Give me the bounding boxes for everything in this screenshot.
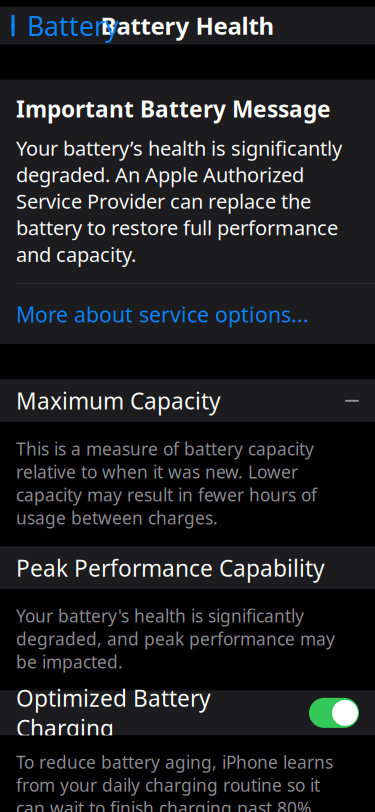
staticText: Battery Health (100, 10, 274, 41)
staticText: Optimized Battery Charging (16, 683, 211, 743)
staticText: Battery (27, 8, 119, 43)
staticText: To reduce battery aging, iPhone learns f… (16, 750, 333, 812)
button[interactable]: More about service options... (16, 284, 375, 344)
staticText: Your battery’s health is significantly d… (16, 135, 342, 267)
button[interactable]: Maximum Capacity (0, 379, 375, 422)
staticText: Your battery's health is significantly d… (16, 604, 335, 673)
staticText: More about service options... (16, 300, 309, 328)
staticText: This is a measure of battery capacity re… (16, 437, 317, 529)
staticText: Maximum Capacity (16, 386, 221, 416)
staticText: Peak Performance Capability (16, 553, 325, 583)
button[interactable]: Battery (0, 0, 119, 51)
button[interactable]: Optimized Battery Charging (0, 690, 375, 735)
staticText: Important Battery Message (16, 93, 331, 124)
button[interactable]: Peak Performance Capability (0, 546, 375, 589)
